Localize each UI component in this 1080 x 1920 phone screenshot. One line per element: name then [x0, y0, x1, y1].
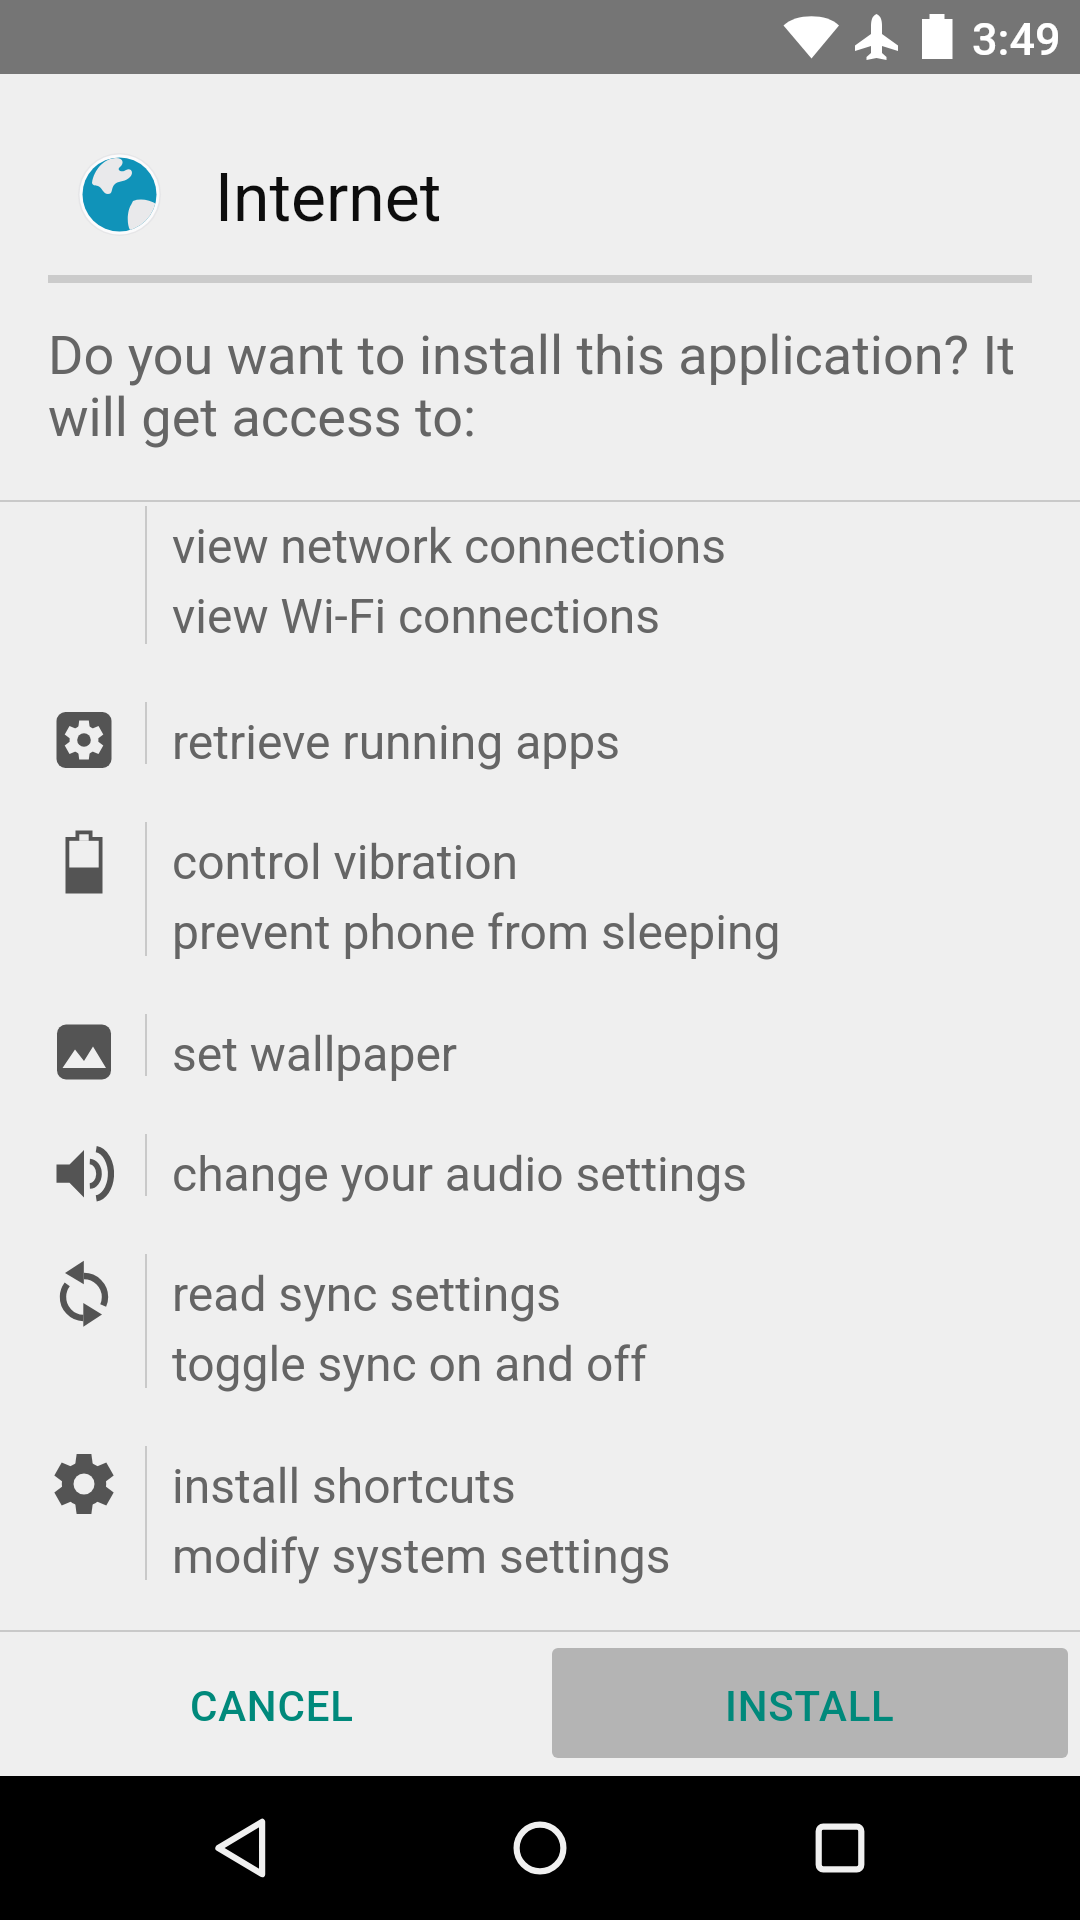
staticText: retrieve running apps: [172, 714, 620, 770]
staticText: INSTALL: [725, 1682, 895, 1731]
staticText: toggle sync on and off: [172, 1336, 647, 1392]
staticText: change your audio settings: [172, 1146, 747, 1202]
button[interactable]: Recent apps: [768, 1776, 912, 1920]
button[interactable]: CANCEL: [8, 1651, 536, 1761]
staticText: install shortcuts: [172, 1458, 516, 1514]
staticText: Internet: [215, 160, 442, 237]
staticText: read sync settings: [172, 1266, 561, 1322]
button[interactable]: Home: [468, 1776, 612, 1920]
staticText: CANCEL: [190, 1682, 354, 1731]
staticText: Do you want to install this application?…: [48, 324, 1033, 449]
staticText: prevent phone from sleeping: [172, 904, 781, 960]
staticText: view network connections: [172, 518, 727, 574]
staticText: control vibration: [172, 834, 519, 890]
staticText: modify system settings: [172, 1528, 671, 1584]
button[interactable]: INSTALL: [552, 1648, 1068, 1758]
staticText: set wallpaper: [172, 1026, 458, 1082]
staticText: 3:49: [972, 13, 1061, 66]
button[interactable]: Back: [168, 1776, 312, 1920]
staticText: view Wi-Fi connections: [172, 588, 661, 644]
